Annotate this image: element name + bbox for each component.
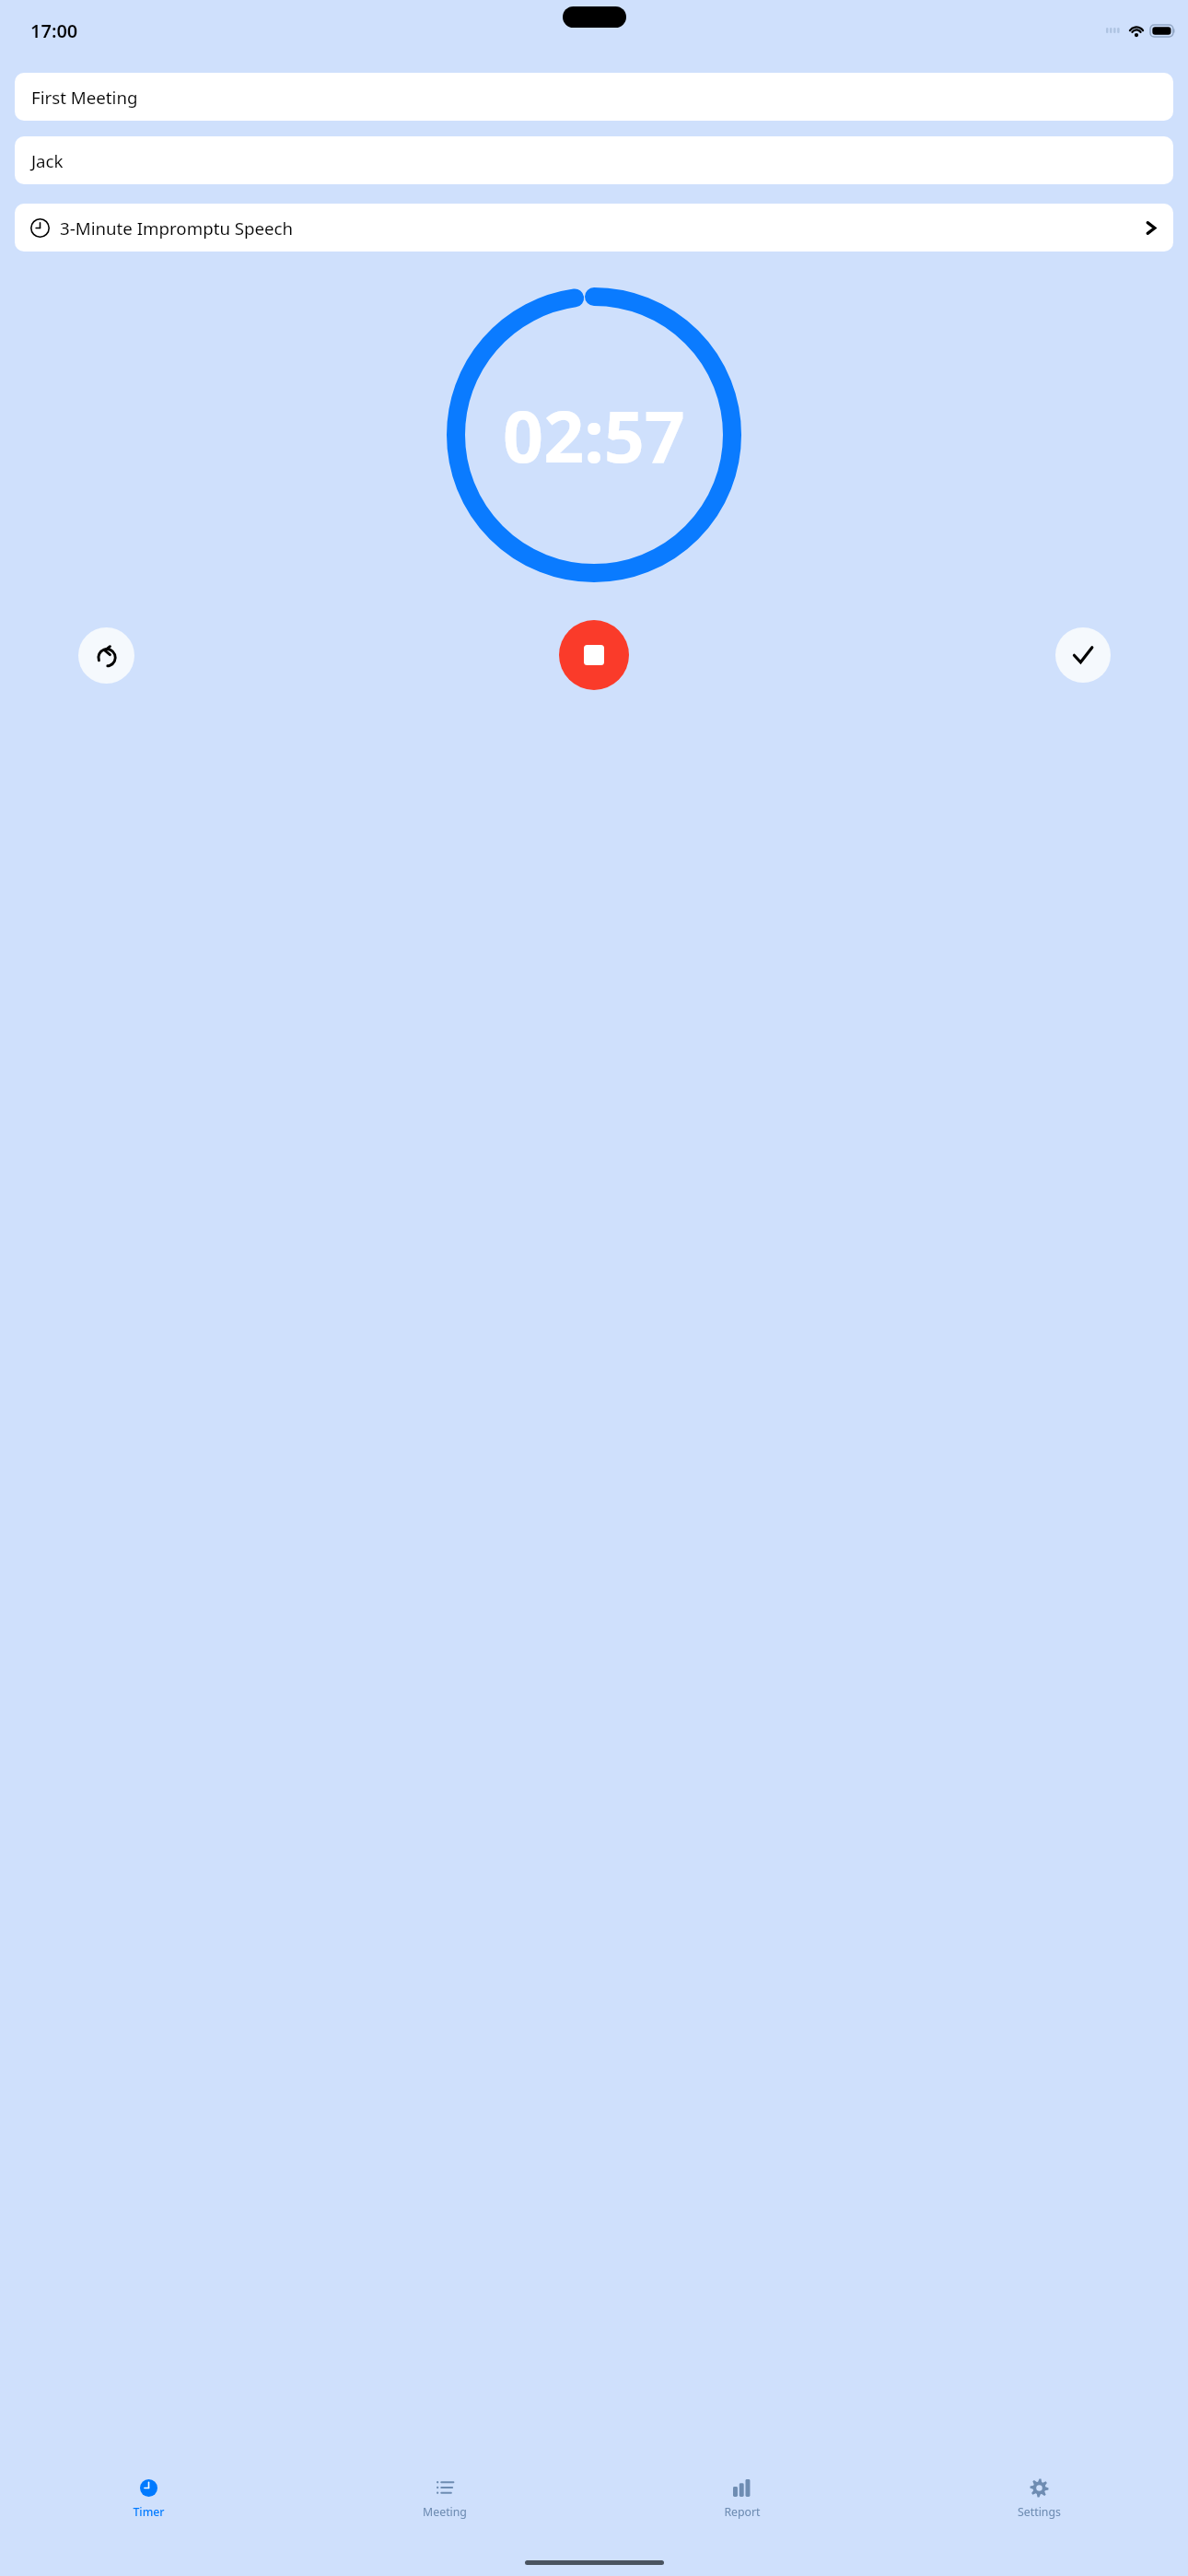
button[interactable]: Settings <box>891 2476 1188 2534</box>
button[interactable]: Done <box>1055 627 1111 683</box>
staticText: 17:00 <box>30 18 78 43</box>
button[interactable]: Report <box>593 2476 891 2534</box>
staticText: First Meeting <box>31 86 138 109</box>
staticText: Settings <box>1018 2504 1061 2520</box>
button[interactable]: 3-Minute Impromptu Speech <box>15 204 1173 252</box>
staticText: Meeting <box>423 2504 467 2520</box>
button[interactable]: Jack <box>15 136 1173 184</box>
button[interactable]: Meeting <box>297 2476 593 2534</box>
button[interactable]: Stop <box>559 620 629 690</box>
button[interactable]: First Meeting <box>15 73 1173 121</box>
button[interactable]: Timer <box>0 2476 297 2534</box>
staticText: 02:57 <box>503 387 685 484</box>
staticText: Report <box>724 2504 761 2520</box>
button[interactable]: Reset <box>78 627 134 684</box>
staticText: Jack <box>31 149 64 172</box>
staticText: 3-Minute Impromptu Speech <box>60 217 1146 240</box>
staticText: Timer <box>133 2504 165 2520</box>
